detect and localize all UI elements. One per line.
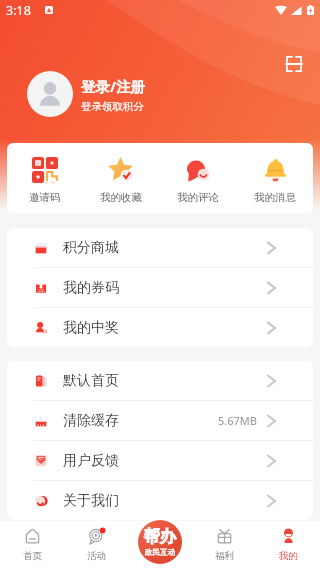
button[interactable]: 首页 — [0, 521, 64, 568]
button[interactable] — [27, 71, 73, 117]
button[interactable]: 用户反馈 — [7, 441, 313, 480]
staticText: 我的收藏 — [100, 191, 142, 204]
staticText: 积分商城 — [63, 239, 119, 257]
staticText: 5.67MB — [218, 413, 257, 428]
staticText: 默认首页 — [63, 372, 119, 390]
staticText: 我的评论 — [177, 191, 219, 204]
button[interactable]: 我的中奖 — [7, 308, 313, 347]
staticText: 政民互动 — [145, 548, 175, 557]
staticText: 福利 — [215, 550, 234, 562]
button[interactable]: 关于我们 — [7, 481, 313, 520]
staticText: 邀请码 — [29, 191, 61, 204]
staticText: 我的中奖 — [63, 319, 119, 337]
button[interactable]: 我的消息 — [236, 143, 313, 213]
staticText: 登录领取积分 — [81, 100, 144, 113]
staticText: 帮办 — [144, 527, 176, 547]
button[interactable]: 我的评论 — [159, 143, 236, 213]
button[interactable]: Scan — [286, 56, 302, 72]
staticText: 我的券码 — [63, 279, 119, 297]
staticText: 登录/注册 — [81, 76, 146, 96]
staticText: 首页 — [23, 550, 42, 562]
button[interactable]: 清除缓存 — [7, 401, 313, 440]
button[interactable]: 默认首页 — [7, 361, 313, 400]
staticText: 用户反馈 — [63, 452, 119, 470]
staticText: 我的 — [279, 550, 298, 562]
staticText: 我的消息 — [254, 191, 296, 204]
button[interactable]: 我的 — [256, 521, 320, 568]
staticText: 关于我们 — [63, 492, 119, 510]
button[interactable]: 我的收藏 — [83, 143, 159, 213]
button[interactable]: 我的券码 — [7, 268, 313, 307]
staticText: 3:18 — [6, 2, 31, 19]
button[interactable]: 福利 — [192, 521, 256, 568]
staticText: 活动 — [87, 550, 106, 562]
button[interactable]: 邀请码 — [7, 143, 83, 213]
button[interactable]: 活动 — [64, 521, 128, 568]
button[interactable]: 帮办 — [138, 520, 182, 564]
button[interactable]: 积分商城 — [7, 228, 313, 267]
staticText: 清除缓存 — [63, 412, 119, 430]
